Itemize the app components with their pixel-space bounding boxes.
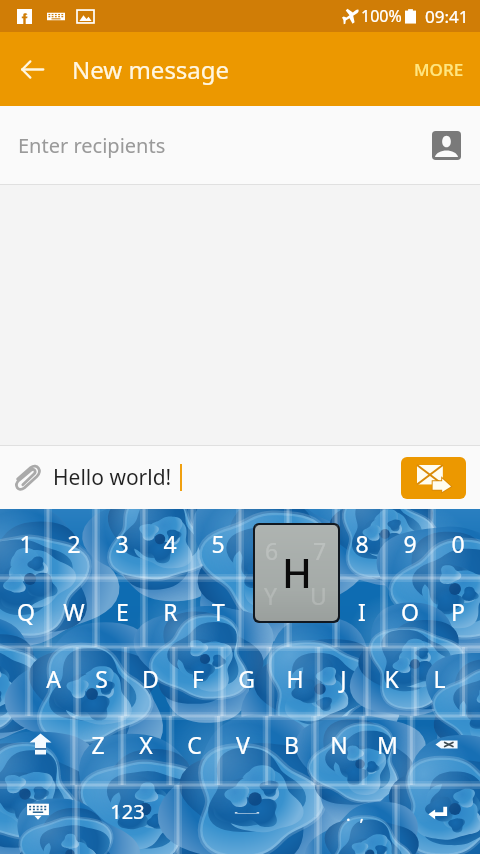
staticText: T (212, 596, 225, 627)
button[interactable]: D (126, 656, 174, 700)
staticText: 0 (451, 528, 465, 559)
staticText: O (401, 596, 419, 627)
staticText: . , (346, 803, 364, 826)
staticText: 100% (361, 5, 402, 27)
staticText: 6 (265, 535, 279, 566)
staticText: H (286, 663, 304, 694)
staticText: J (340, 663, 347, 694)
button[interactable]: 3 (98, 521, 146, 565)
button[interactable]: V (219, 722, 267, 766)
button[interactable]: Send (401, 457, 466, 499)
staticText: Hello world! (53, 463, 172, 492)
staticText: 4 (163, 528, 177, 559)
button[interactable]: 6 (242, 521, 290, 565)
button[interactable]: 8 (338, 521, 386, 565)
staticText: 123 (110, 798, 145, 825)
button[interactable]: S (77, 656, 125, 700)
button[interactable]: Y (242, 589, 290, 633)
button[interactable]: Z (74, 722, 122, 766)
staticText: S (95, 663, 108, 694)
button[interactable]: M (363, 722, 411, 766)
button[interactable]: X (122, 722, 170, 766)
staticText: F (192, 663, 204, 694)
button[interactable]: K (367, 656, 415, 700)
staticText: W (63, 596, 85, 627)
staticText: Z (91, 729, 105, 760)
staticText: Y (264, 580, 278, 611)
button[interactable]: R (146, 589, 194, 633)
button[interactable]: F (174, 656, 222, 700)
staticText: U (310, 580, 327, 611)
button[interactable]: H (271, 656, 319, 700)
button[interactable]: Contacts (426, 125, 466, 165)
staticText: C (187, 729, 202, 760)
staticText: 2 (67, 528, 81, 559)
staticText: 6 (259, 528, 273, 559)
staticText: I (358, 596, 366, 627)
button[interactable]: L (415, 656, 463, 700)
staticText: New message (72, 53, 230, 86)
button[interactable]: Enter (408, 791, 468, 835)
staticText: P (451, 596, 465, 627)
button[interactable]: Attach (8, 458, 48, 498)
button[interactable]: 5 (194, 521, 242, 565)
button[interactable]: E (98, 589, 146, 633)
button[interactable]: Backspace (422, 722, 470, 766)
button[interactable]: G (222, 656, 270, 700)
staticText: 1 (19, 528, 33, 559)
staticText: Enter recipients (18, 132, 166, 159)
button[interactable]: N (315, 722, 363, 766)
staticText: R (163, 596, 178, 627)
staticText: 7 (313, 535, 327, 566)
staticText: H (282, 545, 312, 599)
button[interactable]: . , (331, 792, 379, 836)
button[interactable]: U (290, 589, 338, 633)
staticText: B (284, 729, 299, 760)
staticText: 9 (403, 528, 417, 559)
button[interactable]: 4 (146, 521, 194, 565)
button[interactable]: Q (2, 589, 50, 633)
staticText: 5 (211, 528, 225, 559)
staticText: X (139, 729, 153, 760)
button[interactable]: 123 (103, 789, 151, 833)
staticText: V (236, 729, 250, 760)
staticText: 09:41 (425, 5, 469, 28)
button[interactable]: W (50, 589, 98, 633)
button[interactable]: I (338, 589, 386, 633)
staticText: U (306, 596, 323, 627)
staticText: G (238, 663, 255, 694)
staticText: K (384, 663, 399, 694)
staticText: E (116, 596, 129, 627)
button[interactable]: J (319, 656, 367, 700)
button[interactable]: T (194, 589, 242, 633)
button[interactable]: 2 (50, 521, 98, 565)
button[interactable]: Back (0, 32, 64, 106)
button[interactable]: Space (199, 791, 295, 835)
staticText: A (46, 663, 61, 694)
button[interactable]: Hide keyboard (14, 787, 62, 835)
staticText: N (330, 729, 348, 760)
button[interactable]: 7 (290, 521, 338, 565)
button[interactable]: 9 (386, 521, 434, 565)
button[interactable]: P (434, 589, 480, 633)
staticText: 7 (307, 528, 321, 559)
button[interactable]: MORE (398, 46, 480, 93)
staticText: 8 (355, 528, 369, 559)
staticText: MORE (414, 58, 464, 81)
button[interactable]: A (29, 656, 77, 700)
button[interactable]: 1 (2, 521, 50, 565)
staticText: 3 (115, 528, 129, 559)
staticText: M (377, 729, 398, 760)
button[interactable]: Shift (16, 719, 64, 769)
staticText: Y (259, 596, 273, 627)
staticText: L (433, 663, 446, 694)
button[interactable]: 0 (434, 521, 480, 565)
staticText: D (142, 663, 159, 694)
staticText: Q (17, 596, 35, 627)
button[interactable]: B (267, 722, 315, 766)
button[interactable]: O (386, 589, 434, 633)
button[interactable]: C (170, 722, 218, 766)
